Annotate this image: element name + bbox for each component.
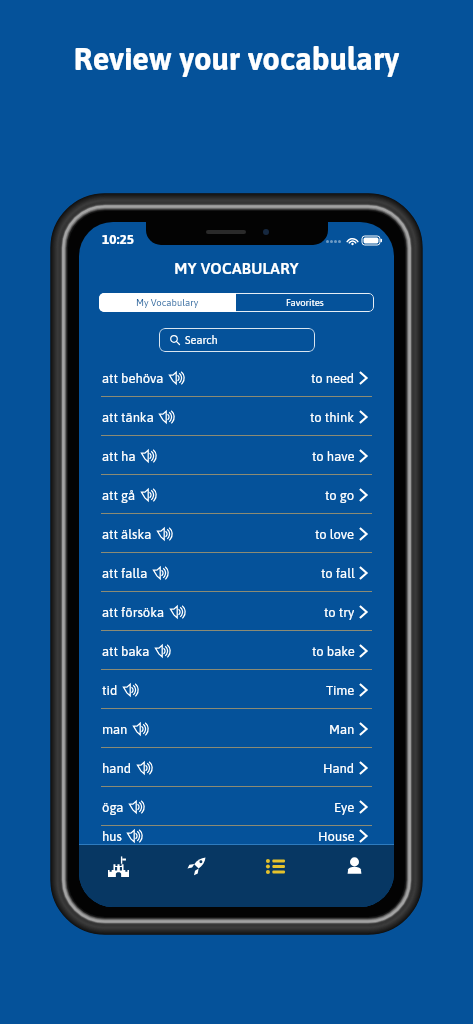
button[interactable]: Favorites (236, 293, 374, 312)
staticText: Favorites (286, 297, 324, 308)
button[interactable]: Vocabulary (236, 845, 315, 907)
staticText: My Vocabulary (136, 297, 199, 308)
staticText: to try (324, 605, 355, 620)
staticText: att älska (102, 527, 152, 542)
staticText: 10:25 (102, 231, 134, 246)
staticText: att behöva (102, 371, 164, 386)
staticText: hus (102, 829, 122, 844)
button[interactable]: My Vocabulary (99, 293, 236, 312)
staticText: Eye (334, 800, 355, 815)
button[interactable]: Profile (315, 845, 394, 907)
staticText: MY VOCABULARY (79, 260, 394, 278)
button[interactable]: Search (159, 328, 315, 352)
button[interactable]: hus (79, 826, 394, 844)
staticText: to fall (321, 566, 355, 581)
staticText: to bake (312, 644, 355, 659)
staticText: to love (315, 527, 355, 542)
staticText: att tänka (102, 410, 154, 425)
button[interactable]: Practice (157, 845, 236, 907)
staticText: att baka (102, 644, 150, 659)
staticText: Man (329, 722, 355, 737)
staticText: to have (312, 449, 355, 464)
button[interactable]: att älska (79, 514, 394, 553)
staticText: öga (102, 800, 124, 815)
staticText: Time (326, 683, 355, 698)
button[interactable]: att falla (79, 553, 394, 592)
staticText: Search (185, 334, 218, 347)
button[interactable]: att försöka (79, 592, 394, 631)
button[interactable]: öga (79, 787, 394, 826)
staticText: Hand (323, 761, 355, 776)
staticText: att falla (102, 566, 148, 581)
staticText: man (102, 722, 128, 737)
staticText: House (318, 829, 355, 844)
button[interactable]: tid (79, 670, 394, 709)
staticText: to need (311, 371, 355, 386)
button[interactable]: man (79, 709, 394, 748)
staticText: to think (310, 410, 355, 425)
staticText: tid (102, 683, 118, 698)
button[interactable]: att gå (79, 475, 394, 514)
staticText: hand (102, 761, 132, 776)
staticText: Review your vocabulary (0, 41, 473, 77)
staticText: to go (325, 488, 355, 503)
staticText: att försöka (102, 605, 165, 620)
button[interactable]: Home (79, 845, 157, 907)
staticText: att gå (102, 488, 136, 503)
button[interactable]: att baka (79, 631, 394, 670)
button[interactable]: att ha (79, 436, 394, 475)
button[interactable]: att behöva (79, 358, 394, 397)
staticText: att ha (102, 449, 136, 464)
button[interactable]: att tänka (79, 397, 394, 436)
button[interactable]: hand (79, 748, 394, 787)
